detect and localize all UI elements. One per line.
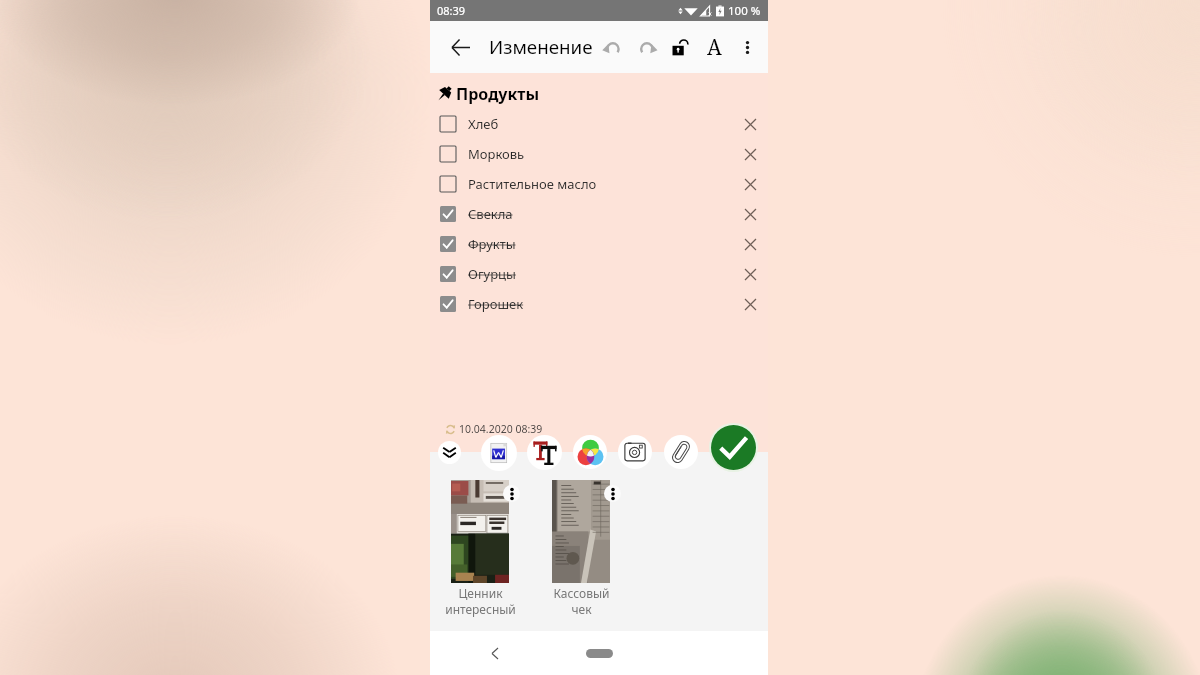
- button[interactable]: Remove item: [736, 110, 764, 138]
- staticText: Горошек: [468, 295, 524, 313]
- button[interactable]: Фрукты: [430, 229, 768, 259]
- staticText: Растительное масло: [468, 175, 597, 193]
- staticText: Морковь: [468, 145, 525, 163]
- button[interactable]: Text format: [527, 435, 562, 470]
- button[interactable]: Attachment options: [552, 480, 632, 617]
- button[interactable]: Продукты: [438, 83, 768, 105]
- staticText: 10.04.2020 08:39: [459, 422, 543, 436]
- button[interactable]: Undo: [597, 32, 627, 62]
- button[interactable]: Back: [482, 640, 508, 666]
- button[interactable]: Camera: [618, 435, 652, 469]
- staticText: Ценник интересный: [445, 585, 516, 617]
- button[interactable]: Colors: [573, 435, 607, 469]
- button[interactable]: Attach file: [664, 435, 698, 469]
- button[interactable]: Attachment options: [451, 480, 531, 617]
- button[interactable]: Remove item: [736, 170, 764, 198]
- button[interactable]: Горошек: [430, 289, 768, 319]
- button[interactable]: Огурцы: [430, 259, 768, 289]
- button[interactable]: Remove item: [736, 140, 764, 168]
- button[interactable]: Remove item: [736, 200, 764, 228]
- button[interactable]: More options: [732, 32, 762, 62]
- button[interactable]: Растительное масло: [430, 169, 768, 199]
- staticText: A: [707, 33, 722, 62]
- button[interactable]: Remove item: [736, 290, 764, 318]
- button[interactable]: Word document: [481, 435, 517, 471]
- staticText: Изменение: [489, 34, 593, 60]
- staticText: Фрукты: [468, 235, 516, 253]
- button[interactable]: Save: [709, 423, 758, 472]
- staticText: Продукты: [456, 83, 540, 105]
- staticText: Хлеб: [468, 115, 499, 133]
- staticText: 100 %: [728, 3, 761, 19]
- staticText: 08:39: [437, 3, 466, 18]
- button[interactable]: Морковь: [430, 139, 768, 169]
- button[interactable]: Unlock: [665, 32, 695, 62]
- button[interactable]: Font size: [699, 32, 729, 62]
- button[interactable]: 10.04.2020 08:39: [445, 422, 543, 436]
- button[interactable]: Back: [442, 29, 478, 65]
- button[interactable]: Хлеб: [430, 109, 768, 139]
- button[interactable]: Home: [586, 649, 613, 658]
- staticText: Свекла: [468, 205, 513, 223]
- button[interactable]: Attachment options: [604, 485, 621, 502]
- button[interactable]: Remove item: [736, 230, 764, 258]
- staticText: Кассовый чек: [553, 585, 610, 617]
- button[interactable]: Collapse: [438, 441, 461, 464]
- button[interactable]: Remove item: [736, 260, 764, 288]
- button[interactable]: Redo: [631, 32, 661, 62]
- staticText: Огурцы: [468, 265, 516, 283]
- button[interactable]: Свекла: [430, 199, 768, 229]
- button[interactable]: Attachment options: [503, 485, 520, 502]
